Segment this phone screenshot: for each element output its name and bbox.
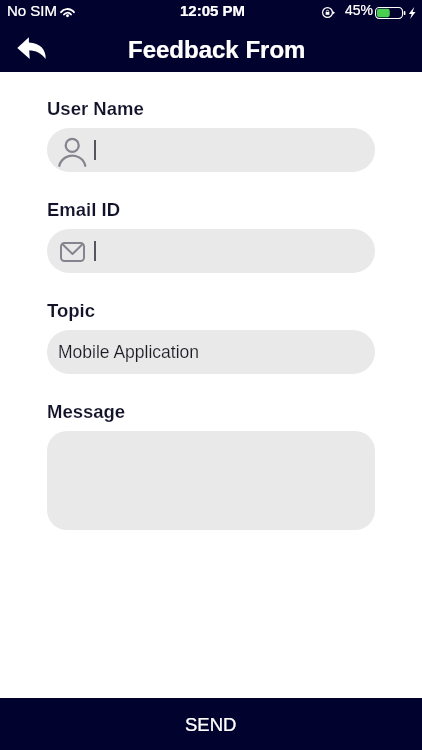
button[interactable] bbox=[47, 128, 375, 172]
staticText: User Name bbox=[47, 98, 144, 119]
staticText: Mobile Application bbox=[58, 342, 200, 362]
button[interactable]: Back bbox=[6, 26, 57, 70]
staticText: Topic bbox=[47, 300, 95, 321]
staticText: Feedback From bbox=[128, 36, 306, 63]
staticText: Email ID bbox=[47, 199, 120, 220]
staticText: SEND bbox=[185, 714, 237, 735]
button[interactable] bbox=[47, 229, 375, 273]
button[interactable]: Mobile Application bbox=[47, 330, 375, 374]
staticText: 45% bbox=[345, 2, 374, 18]
button[interactable]: SEND bbox=[0, 698, 422, 750]
staticText: 12:05 PM bbox=[180, 2, 246, 19]
staticText: No SIM bbox=[7, 2, 58, 19]
staticText: Message bbox=[47, 401, 126, 422]
